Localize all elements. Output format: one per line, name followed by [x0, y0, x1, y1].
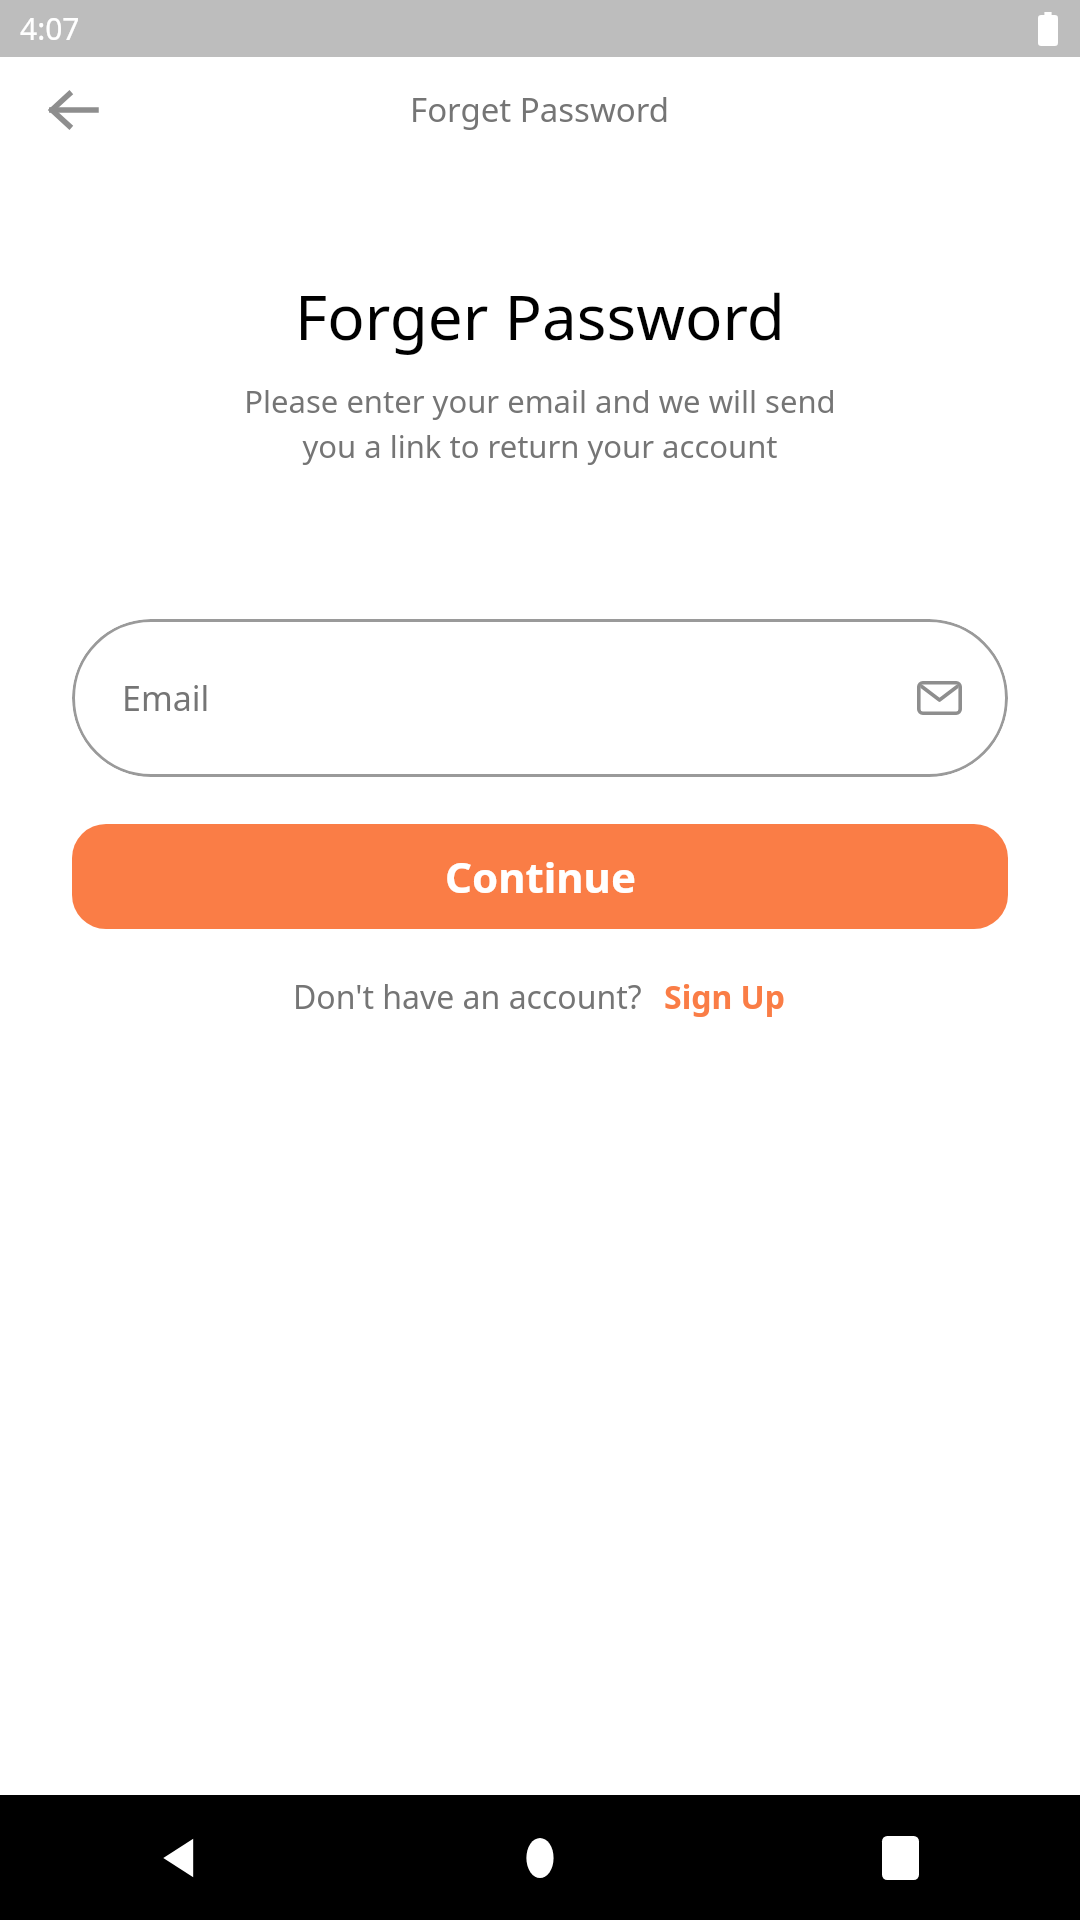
button[interactable]: Back	[0, 1795, 360, 1920]
button[interactable]: Continue	[72, 824, 1008, 929]
staticText: Sign Up	[664, 975, 785, 1019]
staticText: 4:07	[20, 8, 80, 49]
staticText: Please enter your email and we will send…	[24, 380, 1056, 467]
button[interactable]: Sign Up	[662, 971, 787, 1023]
staticText: Email	[122, 675, 917, 721]
staticText: Don't have an account?	[293, 975, 642, 1019]
button[interactable]: Back	[24, 61, 122, 159]
staticText: Continue	[445, 848, 636, 905]
staticText: Forger Password	[0, 274, 1080, 358]
staticText: Forget Password	[410, 87, 670, 132]
button[interactable]: Email	[72, 619, 1008, 777]
button[interactable]: Recent apps	[720, 1795, 1080, 1920]
button[interactable]: Home	[360, 1795, 720, 1920]
